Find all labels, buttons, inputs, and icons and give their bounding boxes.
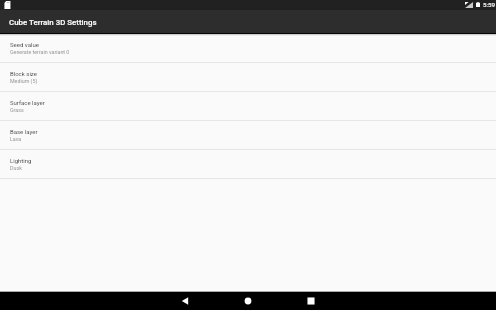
staticText: Dusk: [10, 165, 22, 171]
staticText: Seed value: [10, 41, 39, 48]
staticText: Surface layer: [10, 99, 45, 106]
button[interactable]: Base layer: [0, 121, 496, 150]
staticText: Grass: [10, 107, 24, 113]
staticText: Cube Terrain 3D Settings: [9, 18, 97, 27]
button[interactable]: Surface layer: [0, 92, 496, 121]
button[interactable]: Lighting: [0, 150, 496, 179]
button[interactable]: Home: [241, 294, 255, 308]
staticText: Block size: [10, 70, 37, 77]
staticText: 5:59: [483, 1, 495, 8]
button[interactable]: Seed value: [0, 34, 496, 63]
staticText: Lighting: [10, 157, 32, 164]
button[interactable]: Back: [178, 294, 192, 308]
staticText: Medium (5): [10, 78, 38, 84]
staticText: Lava: [10, 136, 22, 142]
staticText: Generate terrain variant 0: [10, 49, 70, 55]
staticText: Base layer: [10, 128, 38, 135]
button[interactable]: Block size: [0, 63, 496, 92]
button[interactable]: Recent apps: [304, 294, 318, 308]
